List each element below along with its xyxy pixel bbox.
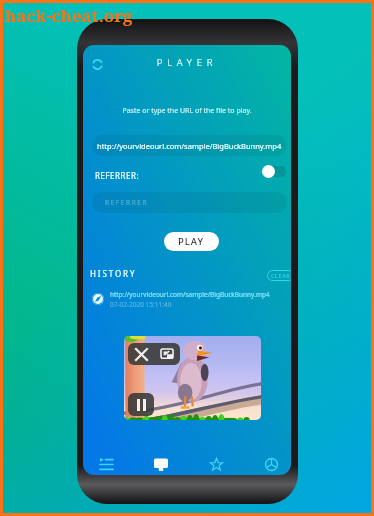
- button[interactable]: Playlist: [89, 450, 123, 475]
- staticText: http://yourvideourl.com/sample/BigBuckBu…: [110, 290, 270, 299]
- staticText: HISTORY: [90, 268, 137, 279]
- button[interactable]: CLEAR: [267, 270, 291, 281]
- button[interactable]: http://yourvideourl.com/sample/BigBuckBu…: [92, 135, 287, 156]
- button[interactable]: Player: [144, 450, 178, 475]
- button[interactable]: REFERRER: [92, 192, 287, 213]
- button[interactable]: PLAY: [164, 232, 219, 251]
- button[interactable]: Settings: [254, 450, 288, 475]
- staticText: 07-02-2020 15:11:40: [110, 300, 172, 309]
- staticText: hack-cheat.org: [5, 4, 133, 27]
- button[interactable]: Referrer switch: [261, 162, 289, 180]
- button[interactable]: Refresh: [87, 54, 107, 74]
- button[interactable]: Picture in picture: [154, 343, 180, 365]
- staticText: http://yourvideourl.com/sample/BigBuckBu…: [97, 141, 282, 151]
- button[interactable]: Close: [128, 343, 154, 365]
- button[interactable]: http://yourvideourl.com/sample/BigBuckBu…: [92, 288, 282, 310]
- staticText: REFERRER: [105, 198, 149, 207]
- staticText: CLEAR: [271, 272, 291, 279]
- staticText: PLAYER: [83, 56, 291, 69]
- staticText: PLAY: [178, 235, 205, 248]
- button[interactable]: Pause: [128, 393, 154, 416]
- button[interactable]: Favorites: [199, 450, 233, 475]
- staticText: Paste or type the URL of the file to pla…: [83, 106, 291, 116]
- staticText: REFERRER:: [95, 170, 140, 181]
